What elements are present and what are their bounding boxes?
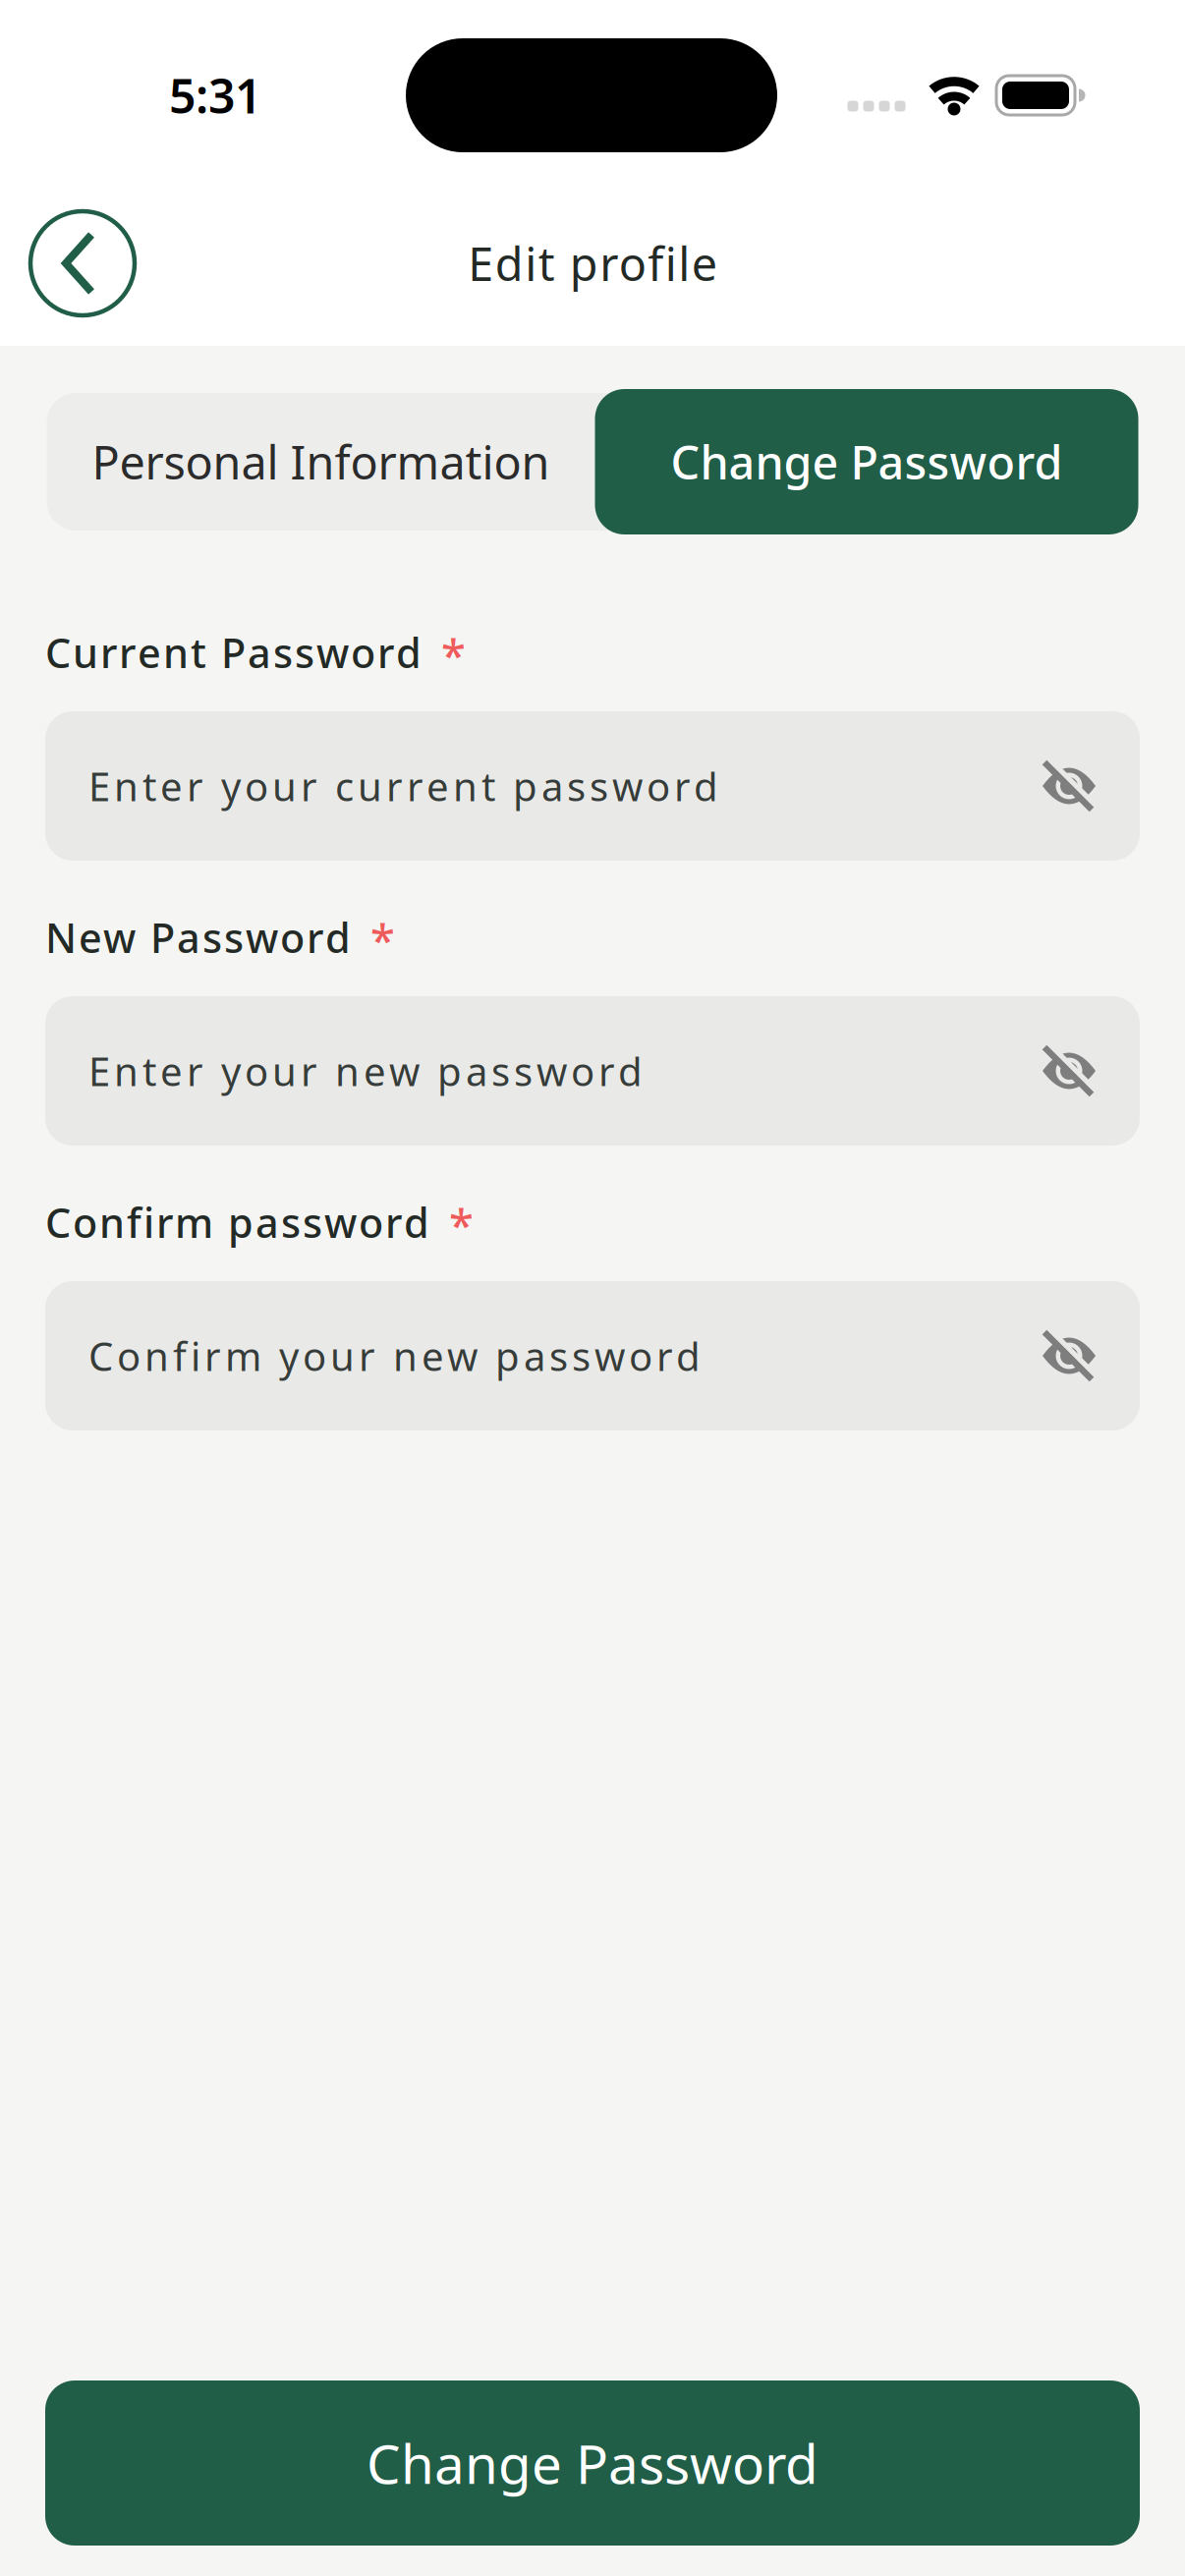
staticText: Enter your new password [88,1045,643,1097]
staticText: New Password [45,910,351,964]
staticText: Change Password [367,2427,818,2499]
staticText: Confirm your new password [88,1330,701,1382]
button[interactable]: Show password [1042,1332,1097,1379]
button[interactable]: Change Password [45,2380,1140,2546]
staticText: Confirm password [45,1195,429,1249]
staticText: * [370,910,395,969]
button[interactable]: Personal Information [47,389,595,534]
staticText: Edit profile [468,233,717,294]
staticText: Personal Information [92,431,550,492]
staticText: Enter your current password [88,760,718,812]
button[interactable]: Back [30,211,135,315]
button[interactable]: Show password [1042,1047,1097,1094]
staticText: * [441,625,466,684]
staticText: Change Password [671,431,1063,492]
staticText: 5:31 [169,64,261,127]
button[interactable]: Change Password [595,389,1138,534]
button[interactable]: Show password [1042,762,1097,810]
staticText: * [449,1195,474,1254]
staticText: Current Password [45,625,422,679]
